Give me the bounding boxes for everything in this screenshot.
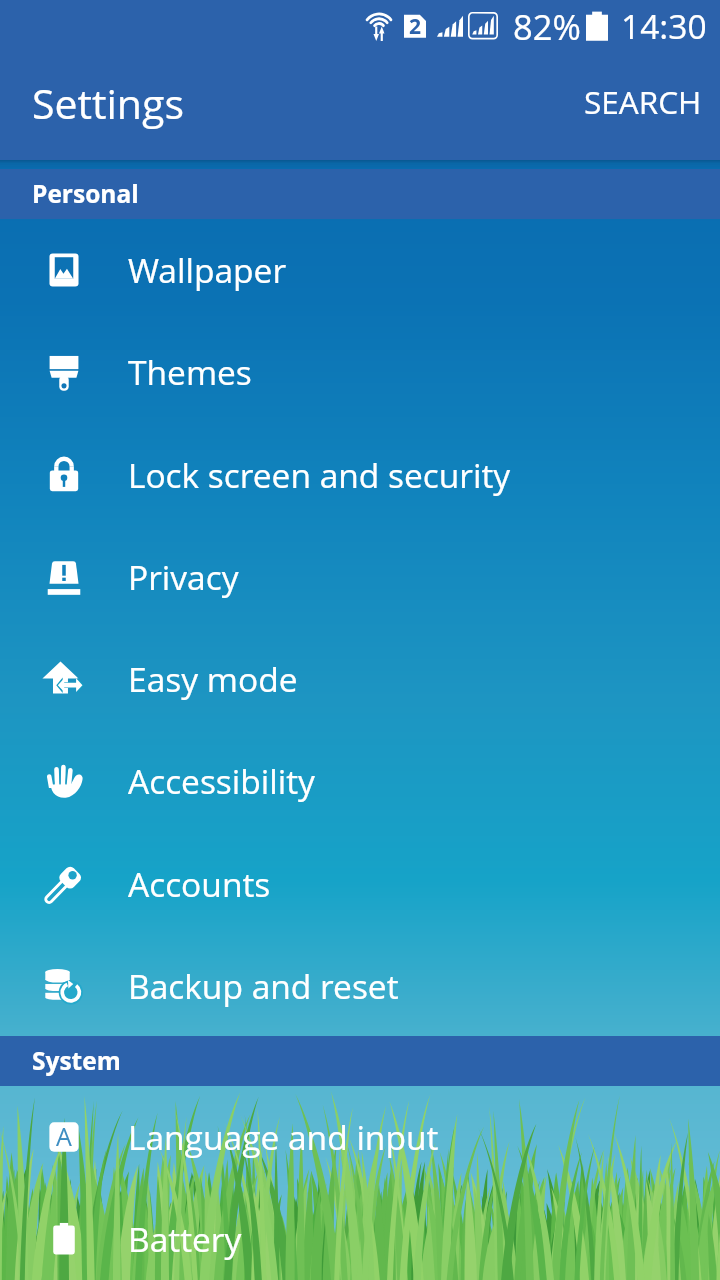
button[interactable]: Wallpaper [0,219,720,321]
staticText: Accounts [128,861,271,907]
button[interactable]: Search [563,68,720,137]
staticText: Wallpaper [128,247,287,293]
button[interactable]: Battery [0,1188,720,1280]
button[interactable]: Themes [0,321,720,423]
staticText: Easy mode [128,656,298,702]
button[interactable]: Privacy [0,526,720,628]
staticText: Lock screen and security [128,452,511,498]
staticText: System [32,1044,121,1077]
staticText: Themes [128,349,252,395]
staticText: A [56,1119,72,1153]
staticText: 14:30 [621,3,707,49]
staticText: Backup and reset [128,963,399,1009]
staticText: 82% [513,3,581,50]
button[interactable]: Accessibility [0,730,720,832]
button[interactable]: A [0,1086,720,1188]
button[interactable]: Lock screen and security [0,424,720,526]
button[interactable]: Backup and reset [0,935,720,1037]
staticText: Battery [128,1216,242,1262]
staticText: Language and input [128,1114,439,1160]
staticText: Privacy [128,554,239,600]
staticText: Accessibility [128,758,315,804]
staticText: Settings [32,75,185,131]
staticText: 2 [409,12,421,40]
button[interactable]: Easy mode [0,628,720,730]
button[interactable]: Accounts [0,833,720,935]
staticText: SEARCH [584,80,702,123]
staticText: Personal [32,177,139,210]
